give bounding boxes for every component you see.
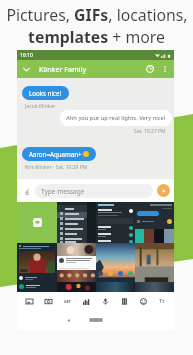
button[interactable]: Text <box>155 294 169 308</box>
staticText: Sat, 10:27 PM <box>134 128 166 135</box>
button[interactable]: Send <box>157 184 170 197</box>
button[interactable]: GIF <box>60 294 74 308</box>
staticText: Looks nice! <box>29 89 62 97</box>
button[interactable]: Screenshot <box>135 282 174 292</box>
button[interactable]: Ahh you put up real lights. Very nice! <box>60 110 172 126</box>
button[interactable]: Screenshot <box>57 282 96 292</box>
staticText: Type message <box>41 187 85 196</box>
button[interactable]: More options <box>158 62 172 76</box>
button[interactable]: Schedule <box>142 61 158 77</box>
button[interactable]: Type message <box>35 184 153 198</box>
button[interactable]: Expand <box>17 60 35 78</box>
staticText: GIF <box>64 299 71 304</box>
button[interactable]: Looks nice! <box>22 86 69 100</box>
button[interactable]: Back <box>62 314 74 326</box>
button[interactable]: Charts <box>79 294 93 308</box>
staticText: Kris Klinker - Sat, 10:29 PM <box>25 164 88 171</box>
button[interactable]: Screenshot <box>96 282 135 292</box>
button[interactable]: Screenshot <box>96 202 135 243</box>
button[interactable]: Emoji <box>136 294 150 308</box>
button[interactable]: Screenshot <box>17 243 57 282</box>
staticText: Jacob Klinker <box>25 103 56 110</box>
button[interactable]: Gallery <box>22 294 36 308</box>
staticText: Ahh you put up real lights. Very nice! <box>66 114 166 122</box>
button[interactable]: Home <box>89 318 103 322</box>
button[interactable]: Card <box>117 294 131 308</box>
staticText: Tt <box>159 297 165 305</box>
button[interactable]: Camera <box>41 294 55 308</box>
button[interactable]: Screenshot <box>96 243 135 282</box>
button[interactable]: Screenshot <box>135 243 174 282</box>
staticText: Klinker Family <box>39 64 87 74</box>
button[interactable]: Voice <box>98 294 112 308</box>
button[interactable]: Screenshot <box>57 202 96 243</box>
button[interactable]: Screenshot <box>17 282 57 292</box>
staticText: Pictures, GIFs, locations, <box>6 4 188 26</box>
button[interactable]: Attach <box>21 185 33 197</box>
button[interactable]: Screenshot <box>57 243 96 282</box>
button[interactable]: App screenshot <box>17 202 57 243</box>
button[interactable]: Aaron=Aquaman+ <box>22 147 96 161</box>
staticText: Aaron=Aquaman+ <box>29 150 82 158</box>
staticText: 10:10 <box>20 52 33 59</box>
staticText: templates + more <box>28 26 165 48</box>
button[interactable]: Screenshot <box>135 202 174 243</box>
